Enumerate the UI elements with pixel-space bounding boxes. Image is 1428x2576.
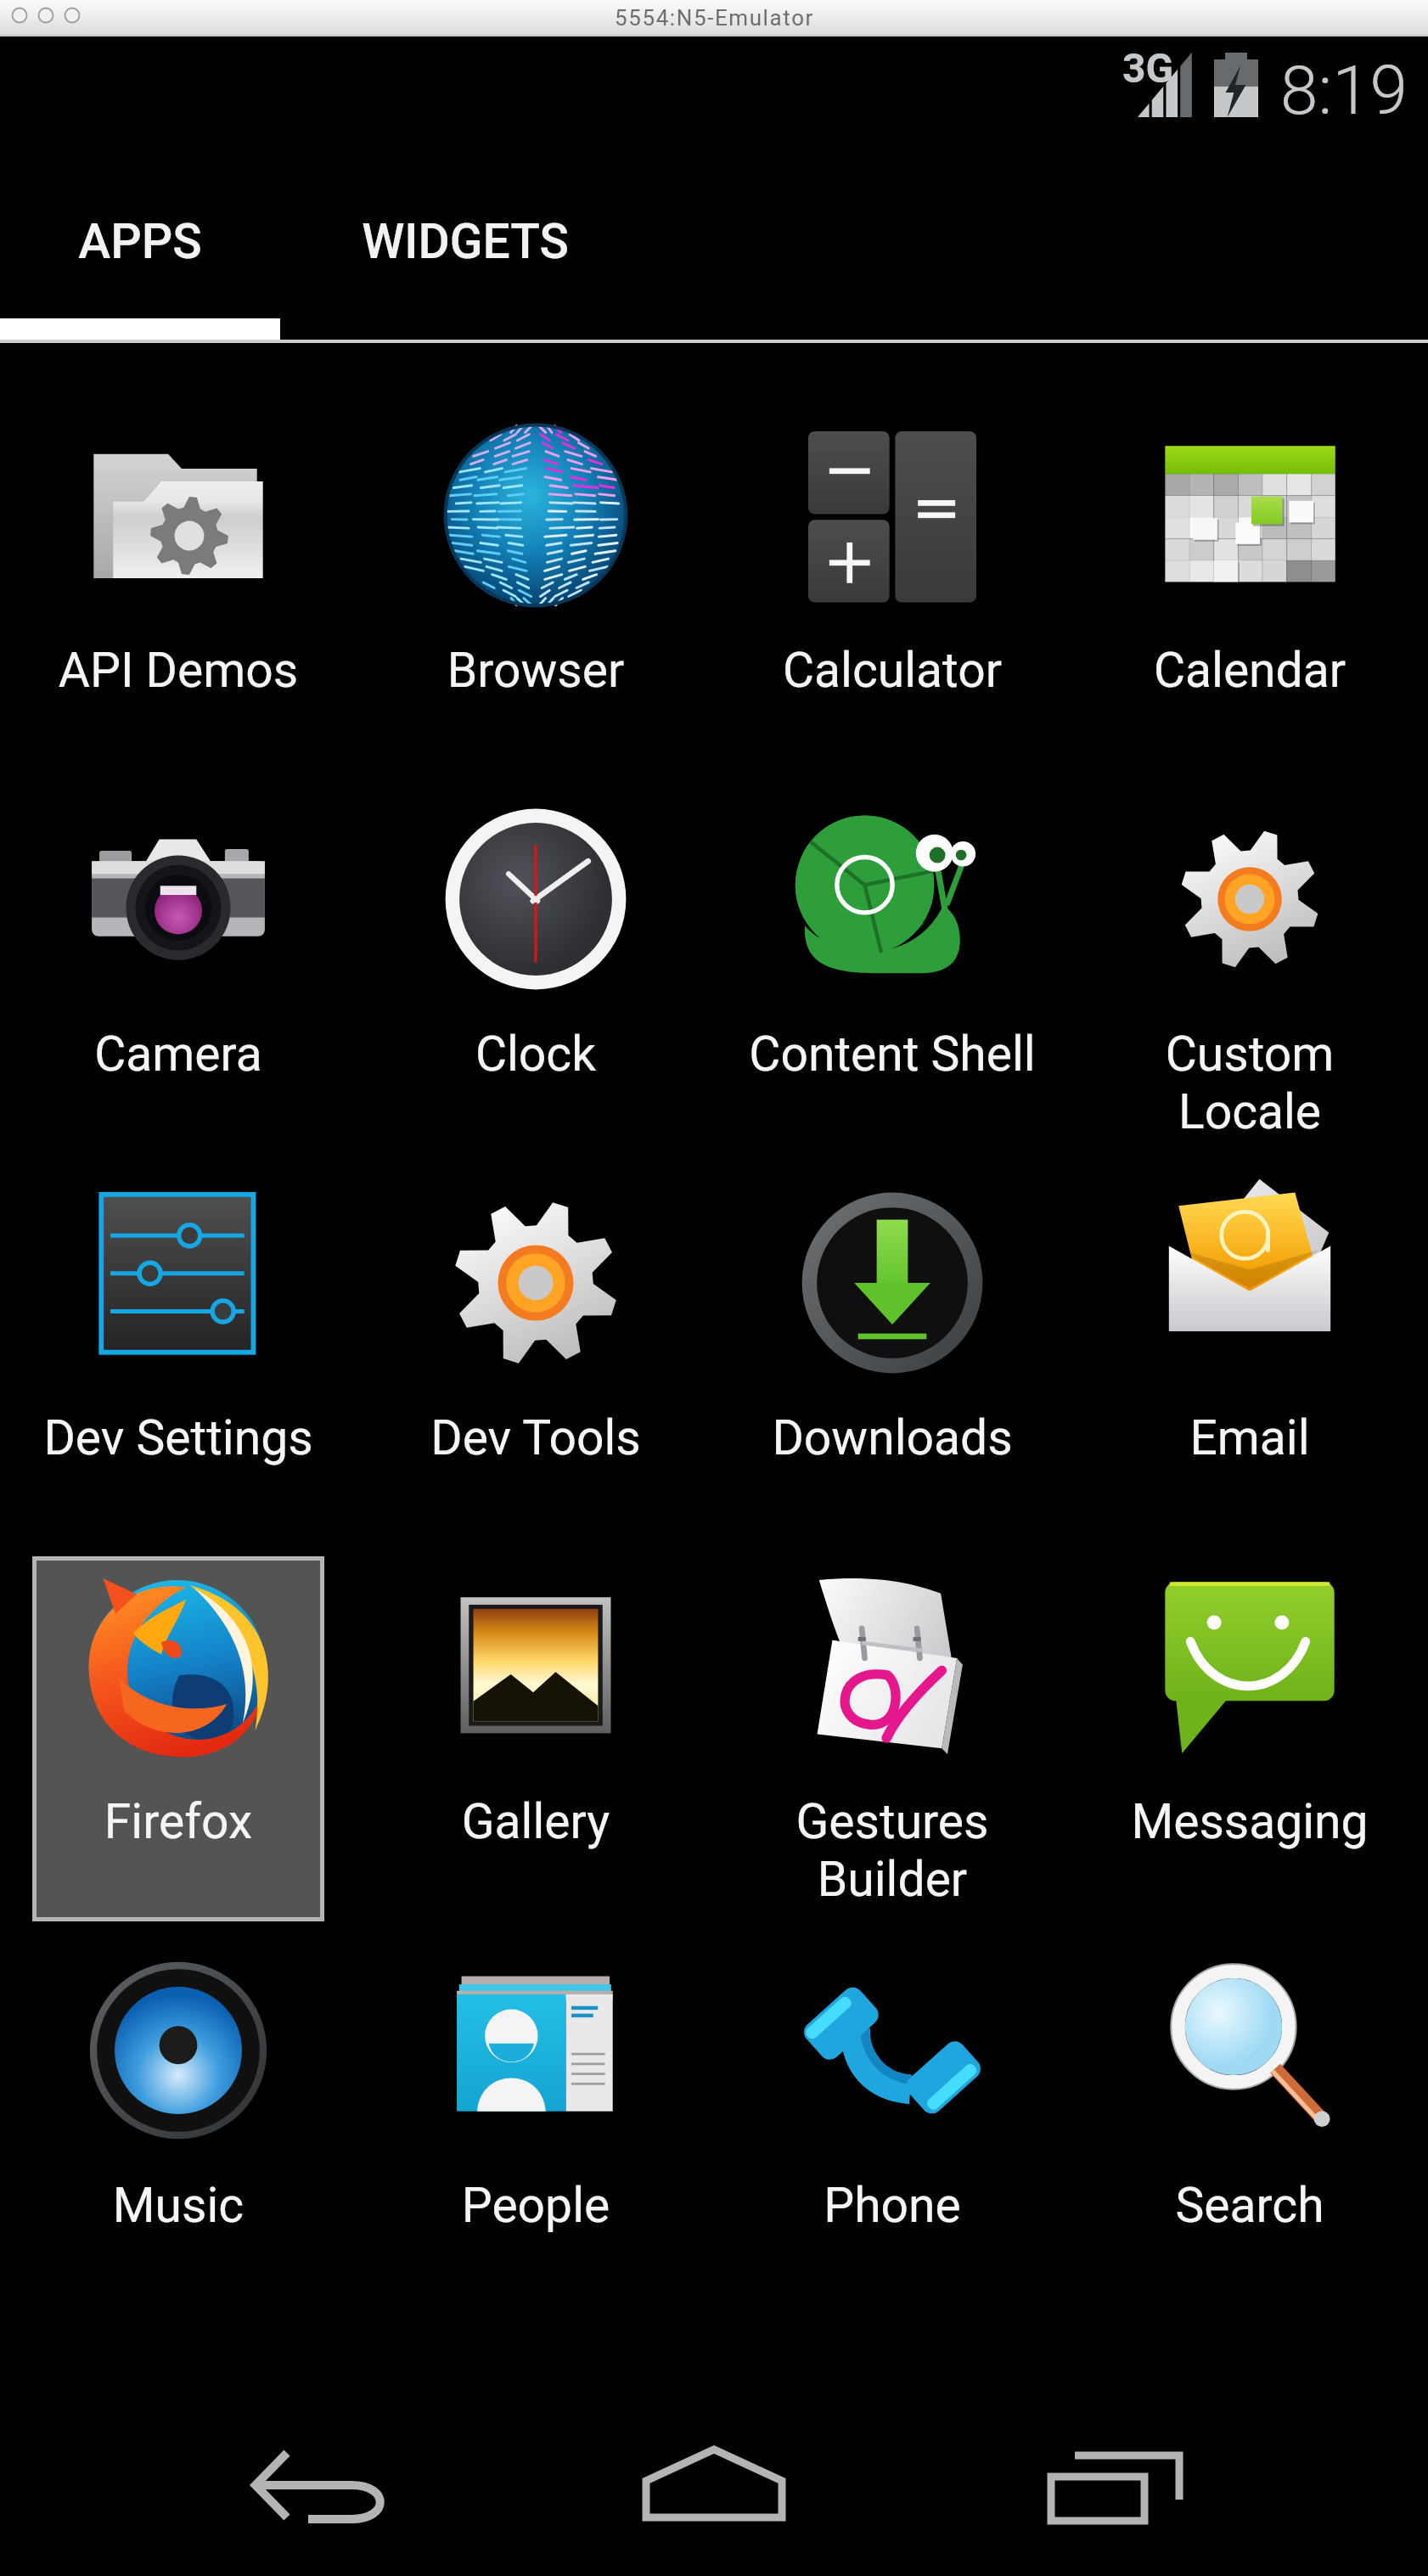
staticText: People bbox=[390, 2177, 682, 2234]
button[interactable]: Dev Settings bbox=[32, 1173, 324, 1538]
staticText: Firefox bbox=[32, 1793, 324, 1850]
staticText: Browser bbox=[390, 642, 682, 699]
button[interactable]: Home bbox=[638, 2406, 790, 2559]
staticText: Downloads bbox=[746, 1409, 1038, 1466]
staticText: Camera bbox=[32, 1026, 324, 1083]
button[interactable]: People bbox=[390, 1940, 682, 2305]
staticText: Calendar bbox=[1104, 642, 1396, 699]
button[interactable]: APPS bbox=[0, 188, 280, 340]
button[interactable]: API Demos bbox=[32, 405, 324, 770]
button[interactable]: Music bbox=[32, 1940, 324, 2305]
staticText: Messaging bbox=[1104, 1793, 1396, 1850]
button[interactable]: Browser bbox=[390, 405, 682, 770]
staticText: Clock bbox=[390, 1026, 682, 1083]
staticText: Music bbox=[32, 2177, 324, 2234]
staticText: Gestures Builder bbox=[746, 1793, 1038, 1908]
button[interactable]: WIDGETS bbox=[325, 188, 605, 340]
staticText: 3G bbox=[1122, 44, 1174, 92]
staticText: Email bbox=[1104, 1409, 1396, 1466]
button[interactable]: Content Shell bbox=[746, 789, 1038, 1154]
button[interactable]: Firefox bbox=[32, 1556, 324, 1921]
button[interactable]: Custom Locale bbox=[1104, 789, 1396, 1154]
button[interactable]: Messaging bbox=[1104, 1556, 1396, 1921]
staticText: Calculator bbox=[746, 642, 1038, 699]
button[interactable]: Phone bbox=[746, 1940, 1038, 2305]
button[interactable]: Gestures Builder bbox=[746, 1556, 1038, 1921]
button[interactable]: Back bbox=[245, 2410, 398, 2563]
button[interactable]: Calendar bbox=[1104, 405, 1396, 770]
button[interactable]: Dev Tools bbox=[390, 1173, 682, 1538]
staticText: WIDGETS bbox=[362, 213, 569, 270]
button[interactable]: Recent apps bbox=[1039, 2404, 1192, 2556]
button[interactable]: Downloads bbox=[746, 1173, 1038, 1538]
staticText: APPS bbox=[78, 213, 202, 270]
button[interactable]: Search bbox=[1104, 1940, 1396, 2305]
button[interactable]: Calculator bbox=[746, 405, 1038, 770]
button[interactable]: Email bbox=[1104, 1173, 1396, 1538]
staticText: Gallery bbox=[390, 1793, 682, 1850]
button[interactable]: Gallery bbox=[390, 1556, 682, 1921]
staticText: Custom Locale bbox=[1104, 1026, 1396, 1140]
staticText: Dev Tools bbox=[390, 1409, 682, 1466]
staticText: Phone bbox=[746, 2177, 1038, 2234]
staticText: Content Shell bbox=[746, 1026, 1038, 1083]
button[interactable]: Clock bbox=[390, 789, 682, 1154]
staticText: 8:19 bbox=[1280, 51, 1408, 131]
staticText: 5554:N5-Emulator bbox=[615, 5, 814, 31]
staticText: Dev Settings bbox=[32, 1409, 324, 1466]
staticText: API Demos bbox=[32, 642, 324, 699]
staticText: Search bbox=[1104, 2177, 1396, 2234]
button[interactable]: Camera bbox=[32, 789, 324, 1154]
